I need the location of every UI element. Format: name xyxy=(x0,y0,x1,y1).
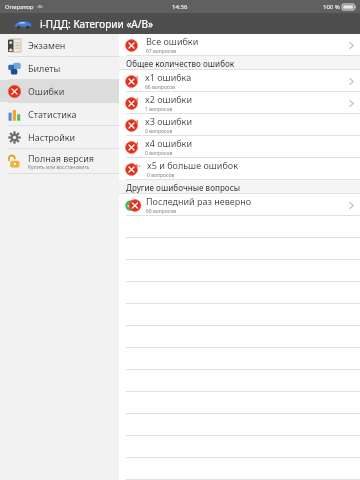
button[interactable]: Полная версия xyxy=(0,149,119,173)
staticText: 3 xyxy=(136,119,139,124)
button[interactable]: 2 xyxy=(119,92,360,114)
staticText: 1 вопросов xyxy=(145,106,173,113)
staticText: Последний раз неверно xyxy=(146,195,252,207)
staticText: Ошибки xyxy=(28,85,65,97)
staticText: Оператор xyxy=(5,3,34,11)
staticText: 0 вопросов xyxy=(147,172,175,179)
staticText: Купить или восстановить xyxy=(28,164,90,171)
staticText: Все ошибки xyxy=(146,35,199,47)
staticText: x5 и больше ошибок xyxy=(147,159,238,171)
staticText: 100 % xyxy=(323,3,340,11)
button[interactable]: Настройки xyxy=(0,126,119,148)
button[interactable]: 4 xyxy=(119,136,360,158)
staticText: 1 xyxy=(136,75,139,80)
button[interactable]: Все ошибки xyxy=(119,34,360,56)
staticText: x4 ошибки xyxy=(145,137,192,149)
other: App icon xyxy=(14,19,32,29)
button[interactable]: 3 xyxy=(119,114,360,136)
staticText: Билеты xyxy=(28,62,61,74)
button[interactable]: 5+ xyxy=(119,158,360,180)
staticText: Экзамен xyxy=(28,39,66,51)
staticText: 60 вопросов xyxy=(146,208,177,215)
staticText: 5+ xyxy=(136,163,141,168)
staticText: 66 вопросов xyxy=(145,84,176,91)
staticText: 0 вопросов xyxy=(145,128,173,135)
staticText: Другие ошибочные вопросы xyxy=(126,182,240,193)
staticText: Общее количество ошибок xyxy=(126,58,235,69)
staticText: 14:56 xyxy=(172,3,188,11)
button[interactable]: Экзамен xyxy=(0,34,119,56)
staticText: 2 xyxy=(136,97,139,102)
staticText: 4 xyxy=(136,141,139,146)
staticText: i-ПДД: Категории «А/B» xyxy=(40,17,154,31)
button[interactable]: Статистика xyxy=(0,103,119,125)
staticText: x3 ошибки xyxy=(145,115,192,127)
staticText: Полная версия xyxy=(28,152,95,164)
staticText: 0 вопросов xyxy=(145,150,173,157)
staticText: Статистика xyxy=(28,108,77,120)
staticText: 67 вопросов xyxy=(146,48,177,55)
button[interactable]: 1 xyxy=(119,70,360,92)
button[interactable]: Последний раз неверно xyxy=(119,194,360,216)
button[interactable]: Билеты xyxy=(0,57,119,79)
staticText: x1 ошибка xyxy=(145,71,192,83)
staticText: Настройки xyxy=(28,131,76,143)
staticText: x2 ошибки xyxy=(145,93,192,105)
button[interactable]: Ошибки xyxy=(0,80,119,102)
